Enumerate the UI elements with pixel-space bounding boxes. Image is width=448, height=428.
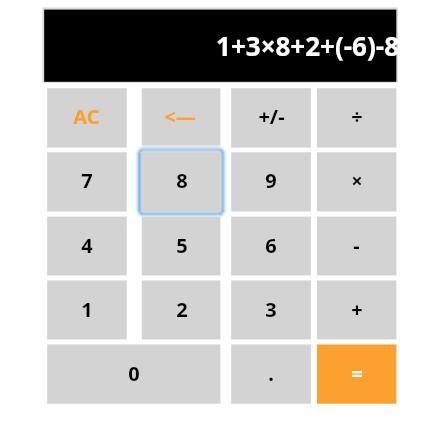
staticText: 6 (265, 232, 277, 259)
staticText: 3 (265, 296, 277, 323)
button[interactable]: Minus (317, 217, 396, 276)
staticText: 7 (81, 167, 93, 194)
button[interactable]: Backspace (142, 88, 221, 147)
button[interactable]: AC (47, 88, 127, 147)
button[interactable]: Divide (317, 88, 396, 147)
staticText: 0 (128, 360, 140, 387)
staticText: 1+3×8+2+(-6)-8 (216, 28, 399, 63)
staticText: <— (164, 103, 196, 130)
button[interactable]: 5 (142, 217, 221, 276)
staticText: 2 (176, 296, 188, 323)
button[interactable]: Multiply (317, 152, 396, 211)
button[interactable]: 6 (231, 217, 311, 276)
button[interactable]: 8 (142, 152, 221, 211)
button[interactable]: Decimal point (231, 345, 311, 404)
button[interactable]: +/- (231, 88, 311, 147)
button[interactable]: 3 (231, 281, 311, 340)
button[interactable]: Plus (317, 281, 396, 340)
button[interactable]: Equals (317, 345, 396, 404)
button[interactable]: 0 (47, 345, 220, 404)
staticText: ÷ (351, 103, 363, 130)
button[interactable]: 1 (47, 281, 127, 340)
staticText: . (268, 360, 274, 387)
staticText: 5 (176, 232, 188, 259)
staticText: 8 (176, 167, 188, 194)
button[interactable]: 4 (47, 217, 127, 276)
staticText: × (351, 167, 363, 194)
staticText: 4 (81, 232, 93, 259)
button[interactable]: 9 (231, 152, 311, 211)
staticText: +/- (258, 103, 285, 130)
staticText: + (351, 296, 363, 323)
staticText: AC (73, 103, 100, 130)
staticText: 9 (265, 167, 277, 194)
staticText: 1 (81, 296, 93, 323)
button[interactable]: 2 (142, 281, 221, 340)
staticText: = (351, 360, 363, 387)
button[interactable]: 7 (47, 152, 127, 211)
staticText: - (353, 232, 360, 259)
